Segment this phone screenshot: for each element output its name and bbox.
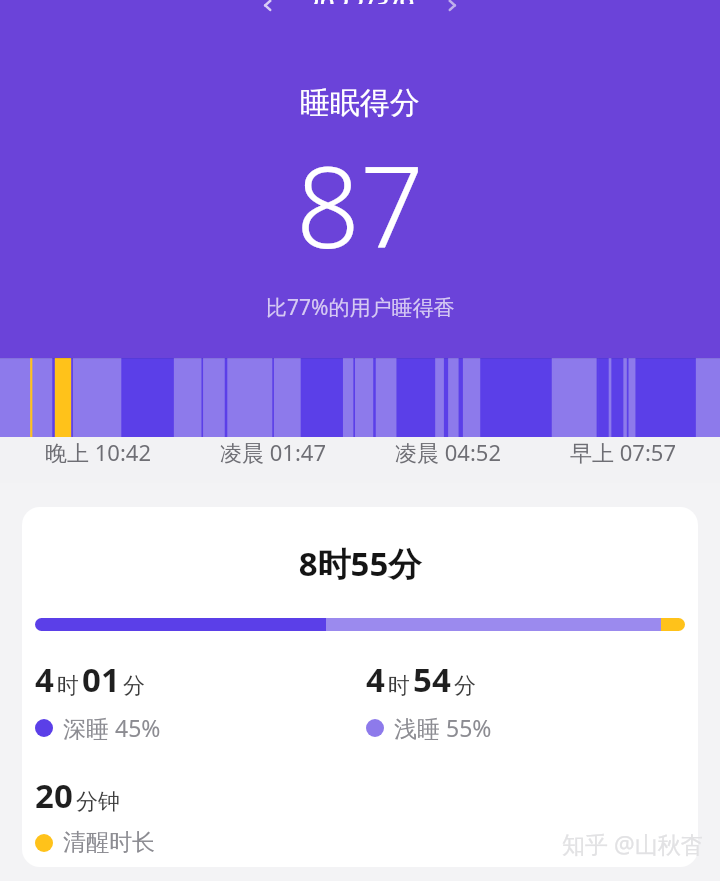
staticText: 8时55分 xyxy=(22,541,698,586)
staticText: 54 xyxy=(413,657,451,702)
staticText: 凌晨 01:47 xyxy=(220,437,326,467)
staticText: 晚上 10:42 xyxy=(45,437,151,467)
staticText: 早上 07:57 xyxy=(570,437,676,467)
staticText: 4 xyxy=(35,657,54,702)
staticText: 2022/3/9 xyxy=(305,0,415,4)
staticText: 分钟 xyxy=(76,788,120,816)
staticText: 浅睡 55% xyxy=(394,712,492,743)
staticText: 知乎 @山秋杳 xyxy=(562,828,704,859)
staticText: 比77%的用户睡得香 xyxy=(266,293,455,322)
staticText: 深睡 45% xyxy=(63,712,161,743)
staticText: 时 xyxy=(57,672,79,700)
staticText: 分 xyxy=(454,672,476,700)
staticText: 清醒时长 xyxy=(63,828,155,857)
staticText: 分 xyxy=(123,672,145,700)
button[interactable]: Previous day xyxy=(249,0,283,18)
staticText: 01 xyxy=(82,657,120,702)
staticText: 4 xyxy=(366,657,385,702)
staticText: 睡眠得分 xyxy=(300,84,420,122)
button[interactable]: 8时55分 xyxy=(22,507,698,867)
staticText: 87 xyxy=(296,128,424,281)
staticText: 凌晨 04:52 xyxy=(395,437,501,467)
button[interactable]: Next day xyxy=(437,0,471,18)
staticText: 时 xyxy=(388,672,410,700)
button[interactable]: 2022/3/9 xyxy=(305,0,415,18)
staticText: 20 xyxy=(35,773,73,818)
